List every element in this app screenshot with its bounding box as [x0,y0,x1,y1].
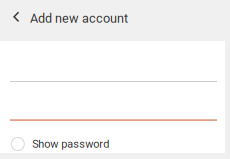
button[interactable]: Show password [0,121,225,159]
staticText: Show password [32,138,109,150]
staticText: Add new account [30,11,128,26]
button[interactable]: Back [7,8,25,29]
